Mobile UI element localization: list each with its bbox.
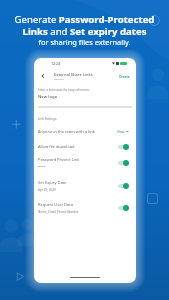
button[interactable]: View — [117, 129, 129, 134]
staticText: Important — [54, 78, 64, 81]
staticText: Generate Password-Protected Links and Se… — [0, 13, 169, 38]
staticText: Password Protect Link — [38, 157, 80, 162]
staticText: Enter a link name for easy reference. — [38, 88, 90, 92]
button[interactable]: Toggle — [118, 183, 129, 189]
button[interactable]: Allow file download — [34, 141, 136, 152]
staticText: Set Expiry Date — [38, 180, 67, 185]
staticText: Link Settings — [38, 117, 57, 121]
staticText: 12:24 — [51, 61, 61, 66]
button[interactable]: Create — [118, 72, 131, 81]
staticText: External Share Links — [54, 72, 93, 77]
button[interactable]: Password Protect Link — [34, 156, 136, 170]
staticText: Anyone in the team with a link — [38, 129, 95, 134]
button[interactable]: Toggle — [118, 160, 129, 166]
staticText: Apr 29, 2020 — [38, 188, 56, 192]
button[interactable]: Toggle — [118, 144, 129, 150]
staticText: •••••• — [38, 165, 45, 169]
staticText: View — [117, 129, 125, 134]
button[interactable]: Request User Data — [34, 201, 136, 215]
staticText: New logo — [38, 93, 58, 99]
staticText: Name, Email, Phone Number — [38, 210, 79, 214]
button[interactable]: Back — [38, 71, 48, 81]
staticText: Request User Data — [38, 202, 73, 207]
staticText: Create — [119, 74, 130, 79]
staticText: for sharing files externally. — [0, 37, 169, 47]
button[interactable]: Set Expiry Date — [34, 179, 136, 193]
button[interactable]: Anyone in the team with a link — [34, 126, 136, 137]
staticText: Allow file download — [38, 144, 75, 149]
button[interactable]: Toggle — [118, 205, 129, 211]
